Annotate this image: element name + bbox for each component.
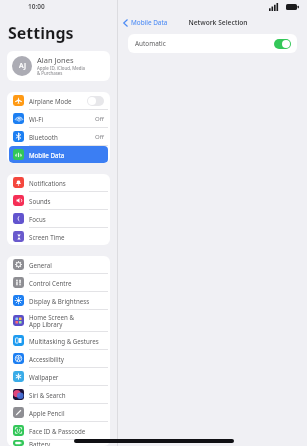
button[interactable]: Apple Pencil [9,404,108,421]
button[interactable]: Control Centre [9,274,108,291]
staticText: 10:00 [28,2,45,11]
button[interactable]: Display & Brightness [9,292,108,309]
staticText: Alan Jones [37,55,74,65]
staticText: Airplane Mode [29,97,104,105]
button[interactable]: Focus [9,210,108,227]
button[interactable]: Sounds [9,192,108,209]
button[interactable]: Automatic [128,34,297,53]
staticText: Focus [29,215,104,223]
button[interactable]: Siri & Search [9,386,108,403]
staticText: Apple ID, iCloud, Media & Purchases [37,65,85,77]
button[interactable]: Wi-Fi [9,110,108,127]
button[interactable]: Home Screen & App Library [9,310,108,331]
button[interactable]: AJ [7,51,110,81]
staticText: Screen Time [29,233,104,241]
staticText: Display & Brightness [29,297,104,305]
button[interactable]: Accessibility [9,350,108,367]
button[interactable]: Wallpaper [9,368,108,385]
staticText: Wi-Fi [29,115,95,123]
staticText: AJ [19,61,26,71]
button[interactable]: Toggle [87,96,104,106]
button[interactable]: Notifications [9,174,108,191]
staticText: Face ID & Passcode [29,427,104,435]
staticText: Off [95,115,104,123]
staticText: Settings [8,22,74,44]
button[interactable]: Bluetooth [9,128,108,145]
staticText: Bluetooth [29,133,95,141]
staticText: Siri & Search [29,391,104,399]
button[interactable]: Face ID & Passcode [9,422,108,439]
button[interactable]: Airplane Mode [9,92,108,109]
staticText: Mobile Data [29,151,104,159]
button[interactable]: Mobile Data [9,146,108,163]
staticText: Notifications [29,179,104,187]
button[interactable]: Multitasking & Gestures [9,332,108,349]
staticText: Network Selection [188,18,248,27]
button[interactable]: Toggle [274,39,291,49]
staticText: Sounds [29,197,104,205]
staticText: Off [95,133,104,141]
button[interactable]: Mobile Data [118,18,173,27]
staticText: Wallpaper [29,373,104,381]
staticText: Home Screen & App Library [29,313,104,329]
staticText: Control Centre [29,279,104,287]
staticText: Automatic [135,39,166,48]
staticText: General [29,261,104,269]
staticText: Multitasking & Gestures [29,337,104,345]
staticText: Mobile Data [131,18,168,27]
staticText: Apple Pencil [29,409,104,417]
staticText: Accessibility [29,355,104,363]
button[interactable]: Battery [9,440,108,446]
staticText: Battery [29,440,104,446]
button[interactable]: General [9,256,108,273]
button[interactable]: Screen Time [9,228,108,245]
